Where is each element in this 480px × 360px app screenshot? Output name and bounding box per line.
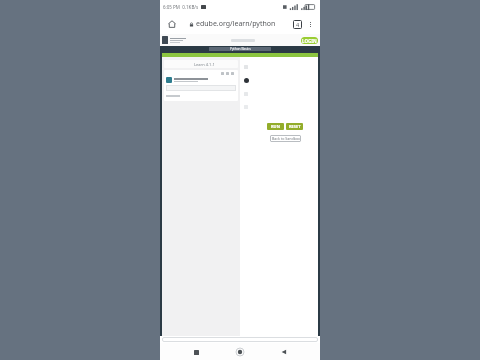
staticText: edube.org/learn/python: [196, 19, 276, 29]
button[interactable]: edube.org/learn/python: [189, 19, 291, 29]
button[interactable]: Tabs: [293, 20, 302, 29]
button[interactable]: RESET: [286, 123, 303, 130]
button[interactable]: Console: [244, 78, 249, 83]
button[interactable]: RUN: [267, 123, 284, 130]
staticText: 4: [296, 21, 300, 28]
button[interactable]: Back: [276, 344, 292, 360]
button[interactable]: Home: [165, 17, 179, 31]
button[interactable]: Toolbar action: [231, 72, 234, 75]
button[interactable]: Home: [232, 344, 248, 360]
staticText: RUN: [271, 124, 280, 129]
button[interactable]: LOGIN: [301, 37, 318, 44]
staticText: Python Basics: [230, 47, 251, 51]
button[interactable]: Back to Sandbox: [270, 135, 301, 142]
staticText: Learn 4.1.1: [194, 62, 215, 67]
staticText: RESET: [289, 124, 301, 129]
button[interactable]: Toolbar action: [221, 72, 224, 75]
button[interactable]: Toolbar action: [226, 72, 229, 75]
button[interactable]: Recent apps: [188, 344, 204, 360]
button[interactable]: [166, 85, 236, 91]
staticText: 6:05 PM 0.1KB/s: [163, 4, 199, 10]
staticText: LOGIN: [302, 38, 317, 44]
button[interactable]: More options: [305, 16, 315, 32]
staticText: Back to Sandbox: [272, 136, 300, 141]
